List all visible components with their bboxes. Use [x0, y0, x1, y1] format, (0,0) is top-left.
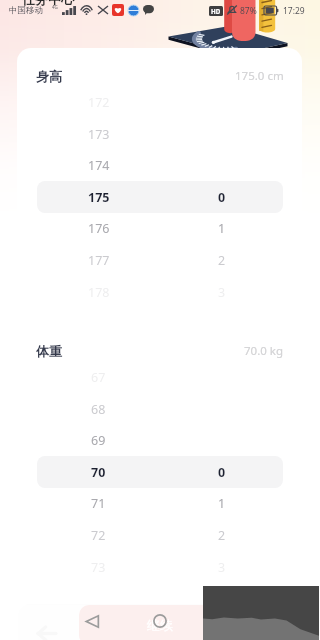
- staticText: 178: [88, 284, 110, 301]
- staticText: 2: [218, 252, 226, 269]
- button[interactable]: 176: [37, 212, 283, 244]
- button[interactable]: 继续: [79, 605, 241, 640]
- staticText: 3: [218, 284, 226, 301]
- staticText: 0: [218, 464, 226, 481]
- button[interactable]: 175: [37, 181, 283, 213]
- staticText: 继续: [147, 617, 173, 633]
- staticText: 71: [91, 495, 106, 512]
- staticText: 2: [218, 527, 226, 544]
- staticText: 177: [88, 252, 110, 269]
- staticText: 任务中心: [22, 0, 74, 7]
- button[interactable]: Recents: [212, 605, 244, 637]
- button[interactable]: 72: [37, 519, 283, 551]
- staticText: 73: [91, 559, 106, 576]
- button[interactable]: 68: [37, 393, 283, 425]
- staticText: 3: [218, 559, 226, 576]
- staticText: 68: [91, 401, 106, 418]
- staticText: 173: [88, 126, 110, 143]
- staticText: 175: [88, 189, 110, 206]
- button[interactable]: 177: [37, 244, 283, 276]
- staticText: 1: [218, 495, 226, 512]
- staticText: 87%: [240, 5, 257, 17]
- staticText: 172: [88, 94, 110, 111]
- staticText: 174: [88, 157, 110, 174]
- button[interactable]: Home: [144, 605, 176, 637]
- staticText: 0: [218, 189, 226, 206]
- staticText: 17:29: [283, 5, 305, 17]
- button[interactable]: 71: [37, 487, 283, 519]
- button[interactable]: 173: [37, 118, 283, 150]
- staticText: 身高: [36, 68, 62, 84]
- button[interactable]: 174: [37, 149, 283, 181]
- staticText: 70: [91, 464, 106, 481]
- staticText: 1: [218, 220, 226, 237]
- staticText: 72: [91, 527, 106, 544]
- staticText: HD: [211, 7, 221, 15]
- button[interactable]: 69: [37, 424, 283, 456]
- staticText: 176: [88, 220, 110, 237]
- staticText: 体重: [36, 343, 62, 359]
- staticText: 67: [91, 369, 106, 386]
- staticText: 175.0 cm: [235, 68, 284, 84]
- button[interactable]: System back: [76, 605, 108, 637]
- staticText: 4G: [52, 4, 58, 10]
- button[interactable]: 70: [37, 456, 283, 488]
- staticText: 69: [91, 432, 106, 449]
- staticText: 中国移动: [9, 5, 43, 16]
- staticText: 70.0 kg: [244, 343, 284, 359]
